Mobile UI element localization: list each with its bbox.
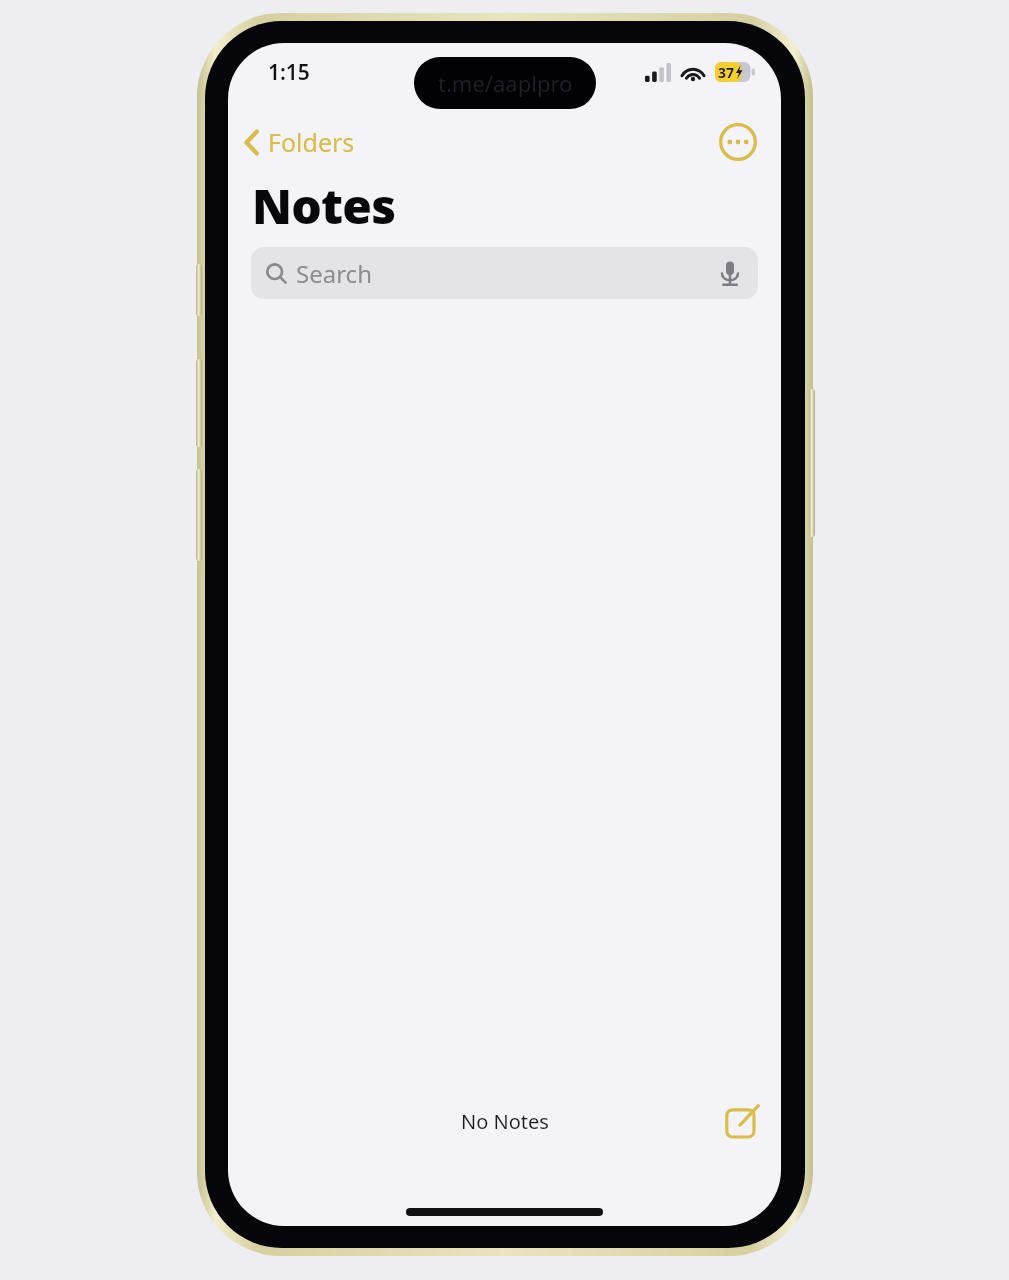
button[interactable]: Dictate: [714, 257, 746, 289]
staticText: No Notes: [461, 1108, 549, 1135]
button[interactable]: New note: [715, 1094, 769, 1148]
staticText: t.me/aaplpro: [438, 68, 573, 98]
staticText: Search: [296, 257, 372, 290]
staticText: 1:15: [268, 58, 310, 87]
button[interactable]: More options: [715, 119, 761, 165]
staticText: Notes: [252, 173, 396, 238]
button[interactable]: Folders: [228, 119, 369, 165]
button[interactable]: Search: [251, 247, 758, 299]
staticText: Folders: [268, 125, 355, 159]
staticText: 37: [718, 63, 735, 82]
